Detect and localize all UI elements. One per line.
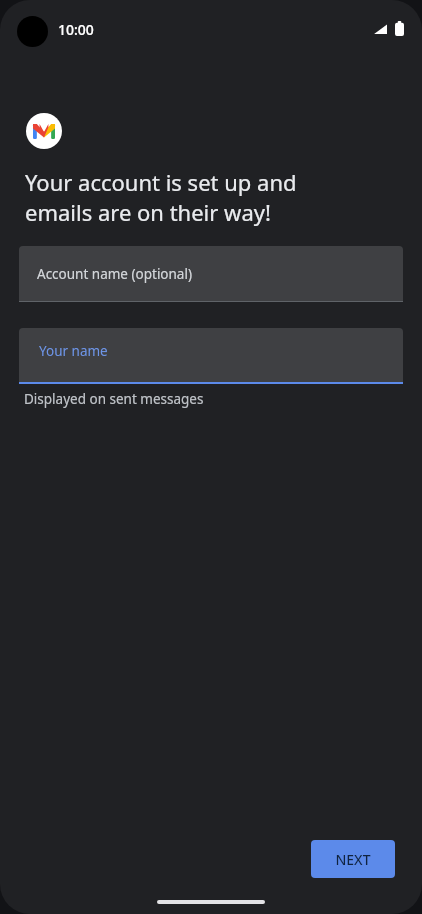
button[interactable]: NEXT	[311, 840, 395, 878]
staticText: Your account is set up and emails are on…	[25, 167, 297, 228]
staticText: Displayed on sent messages	[24, 390, 204, 408]
staticText: 10:00	[58, 20, 94, 39]
button[interactable]: Account name (optional)	[19, 246, 403, 302]
staticText: Your name	[39, 342, 108, 360]
button[interactable]: Your name	[19, 328, 403, 384]
staticText: Account name (optional)	[37, 265, 192, 283]
staticText: NEXT	[335, 850, 371, 869]
